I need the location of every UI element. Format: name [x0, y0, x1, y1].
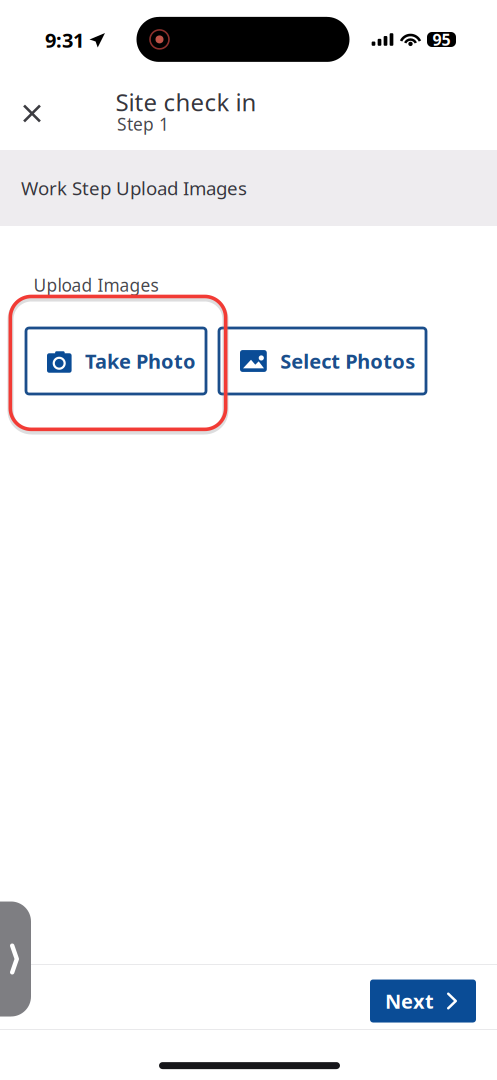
button[interactable]: Open side panel	[0, 901, 31, 1016]
staticText: 95	[432, 29, 450, 50]
staticText: Next	[385, 988, 434, 1014]
button[interactable]: Take Photo	[26, 328, 206, 394]
staticText: Take Photo	[85, 348, 196, 374]
button[interactable]: Select Photos	[219, 328, 426, 394]
staticText: Upload Images	[33, 273, 158, 296]
staticText: Step 1	[117, 112, 169, 135]
button[interactable]: Close	[1, 84, 63, 142]
staticText: Select Photos	[280, 348, 415, 374]
staticText: Work Step Upload Images	[21, 176, 247, 200]
button[interactable]: Next	[370, 979, 476, 1022]
staticText: 9:31	[45, 27, 84, 53]
staticText: Site check in	[115, 86, 256, 118]
